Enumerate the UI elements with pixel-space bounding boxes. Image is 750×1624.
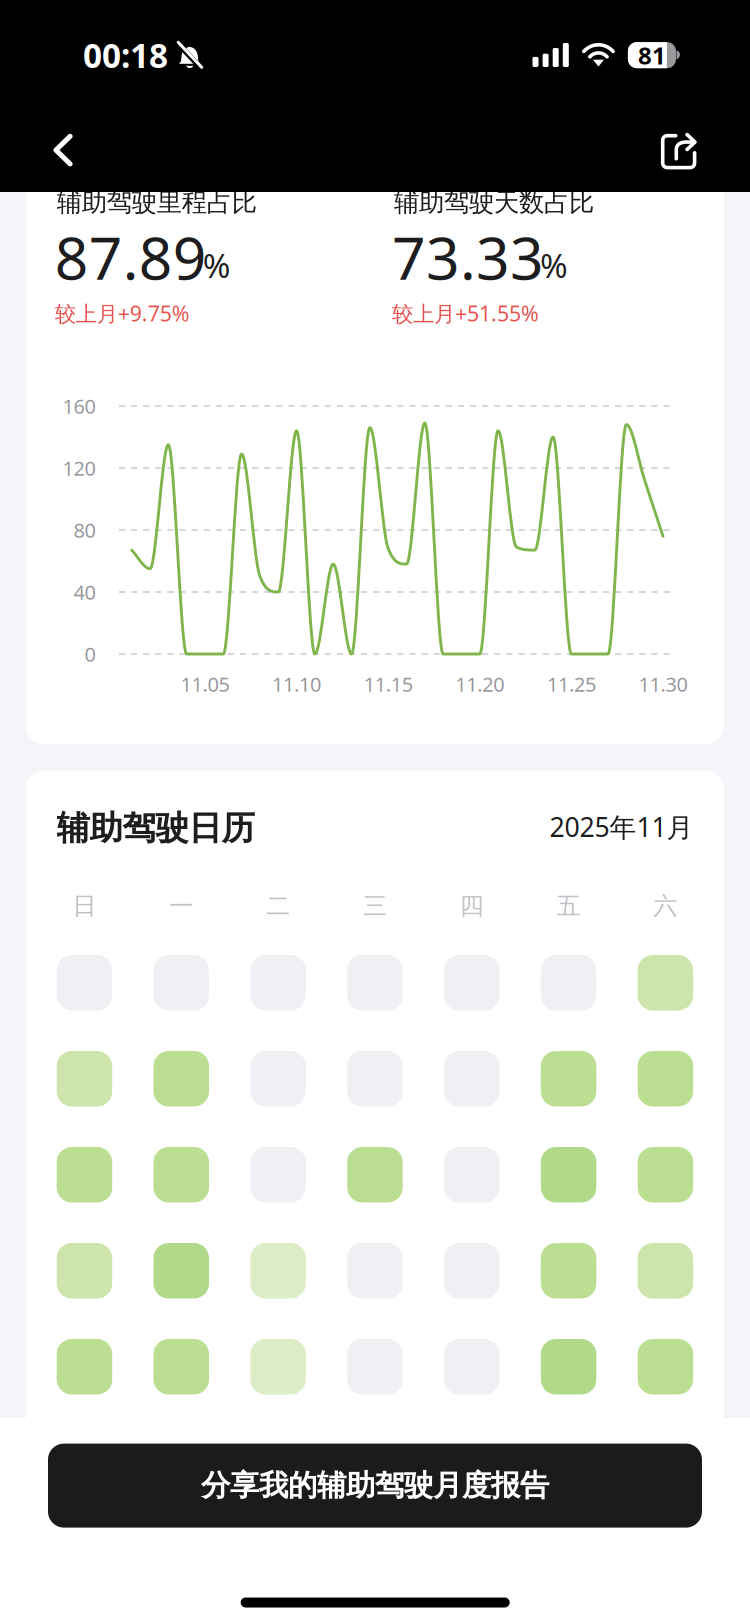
staticText: 较上月+51.55% [392,299,539,327]
staticText: 0 [84,641,95,667]
staticText: 分享我的辅助驾驶月度报告 [201,1468,549,1504]
staticText: % [540,243,568,287]
staticText: 一 [169,891,193,921]
staticText: 11.15 [364,671,413,697]
staticText: 五 [557,891,581,921]
staticText: 40 [73,579,95,605]
staticText: 较上月+9.75% [55,299,190,327]
staticText: 三 [363,891,387,921]
staticText: 六 [653,891,677,921]
button[interactable]: 分享我的辅助驾驶月度报告 [48,1444,702,1528]
staticText: 2025年11月 [549,809,693,844]
staticText: 二 [266,891,290,921]
staticText: 11.30 [638,671,687,697]
staticText: 11.05 [180,671,229,697]
staticText: % [203,243,231,287]
button[interactable]: Share [646,119,712,185]
staticText: 120 [62,455,95,481]
staticText: 辅助驾驶天数占比 [394,187,594,218]
staticText: 四 [460,891,484,921]
staticText: 11.10 [272,671,321,697]
staticText: 辅助驾驶里程占比 [57,187,257,218]
button[interactable]: Back [30,117,96,183]
staticText: 11.25 [547,671,596,697]
staticText: 81 [638,39,666,71]
staticText: 00:18 [83,33,168,77]
staticText: 80 [73,517,95,543]
staticText: 11.20 [455,671,504,697]
staticText: 辅助驾驶日历 [57,808,255,849]
staticText: 日 [72,891,96,921]
staticText: 87.89 [55,218,207,296]
staticText: 73.33 [392,218,544,296]
staticText: 160 [62,393,95,419]
